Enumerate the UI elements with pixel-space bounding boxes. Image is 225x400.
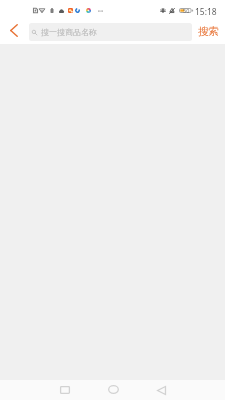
staticText: 搜一搜商品名称 [41, 27, 97, 37]
button[interactable]: Back [137, 380, 185, 400]
staticText: 15:18 [195, 6, 217, 18]
staticText: 搜索 [198, 25, 219, 38]
button[interactable]: Back [0, 19, 29, 44]
button[interactable]: Home [89, 380, 137, 400]
button[interactable]: 搜索 [192, 19, 225, 44]
staticText: 50 [183, 7, 190, 14]
button[interactable]: 搜一搜商品名称 [29, 23, 192, 41]
button[interactable]: Recent apps [41, 380, 89, 400]
